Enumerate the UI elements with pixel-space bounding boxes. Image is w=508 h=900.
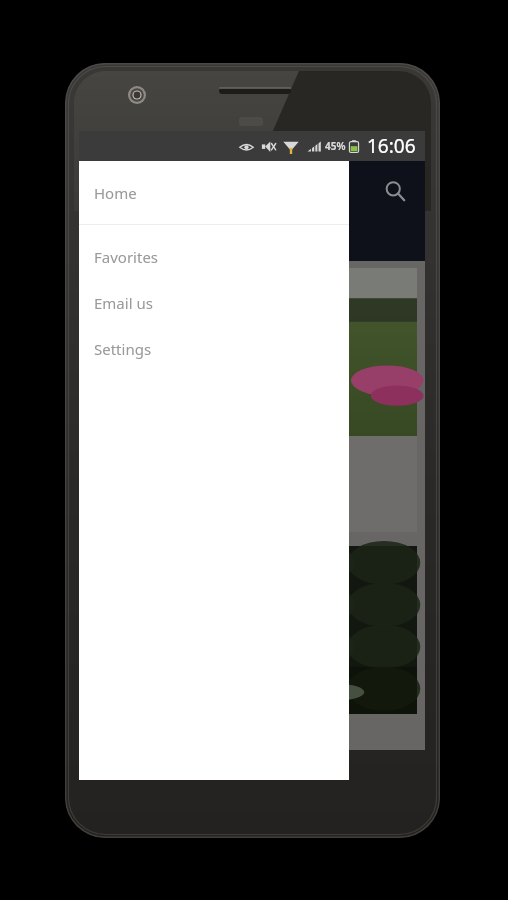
button[interactable]: Settings — [79, 326, 349, 372]
button[interactable]: Home — [79, 161, 349, 224]
staticText: Home — [94, 183, 137, 203]
button[interactable]: Something good for the — [87, 268, 417, 532]
staticText: Settings — [94, 339, 152, 359]
staticText: 45% — [325, 139, 346, 153]
button[interactable]: Search — [371, 167, 419, 215]
button[interactable]: Email us — [79, 280, 349, 326]
staticText: 16:06 — [367, 133, 416, 159]
button[interactable] — [87, 546, 417, 714]
button[interactable]: Favorites — [79, 234, 349, 280]
staticText: Email us — [94, 293, 153, 313]
staticText: Favorites — [94, 247, 159, 267]
